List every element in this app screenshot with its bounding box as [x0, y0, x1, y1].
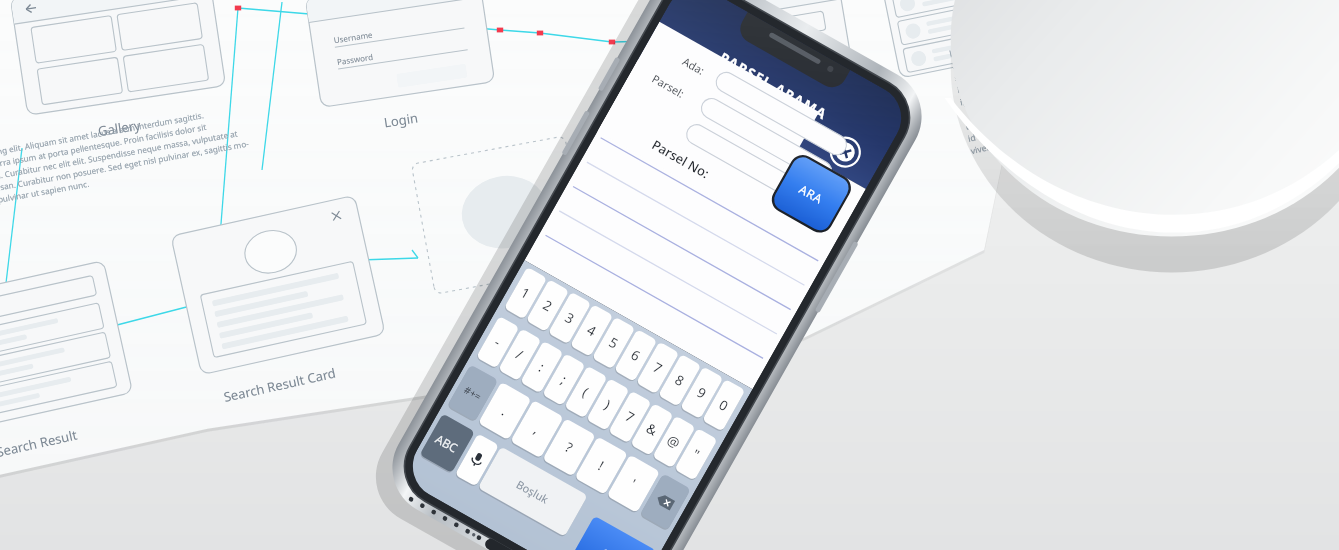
button[interactable]: Parsel Arama app mockup on wireframe she…: [0, 0, 1339, 550]
